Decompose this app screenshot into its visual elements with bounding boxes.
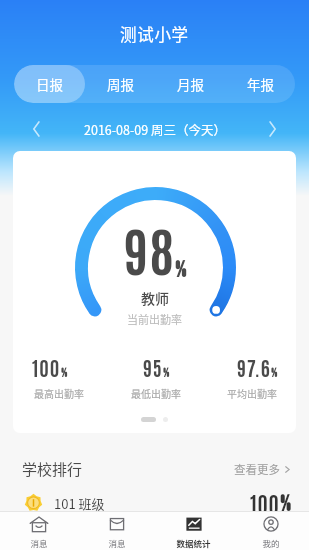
staticText: 教师 — [141, 288, 169, 308]
staticText: 查看更多 — [234, 461, 280, 478]
button[interactable]: 数据统计 — [155, 512, 232, 550]
staticText: 2016-08-09 周三（今天） — [84, 120, 226, 138]
staticText: % — [271, 365, 278, 379]
button[interactable]: 消息 — [78, 512, 155, 550]
staticText: 测试小学 — [120, 22, 189, 46]
staticText: 学校排行 — [22, 458, 83, 480]
staticText: % — [163, 365, 170, 379]
staticText: 月报 — [177, 74, 204, 94]
staticText: 我的 — [262, 537, 280, 549]
staticText: % — [280, 491, 291, 516]
staticText: 100 — [250, 490, 280, 516]
button[interactable]: 周报 — [85, 65, 155, 103]
button[interactable]: 年报 — [225, 65, 295, 103]
staticText: 最高出勤率 — [34, 386, 84, 400]
button[interactable]: 查看更多 — [230, 458, 295, 481]
staticText: 97.6 — [237, 354, 271, 379]
staticText: 最低出勤率 — [131, 386, 181, 400]
staticText: 消息 — [108, 537, 126, 549]
button[interactable]: 消息 — [0, 512, 78, 550]
staticText: 95 — [143, 354, 163, 379]
button[interactable]: Next day — [261, 118, 283, 140]
button[interactable]: 101 班级 — [0, 490, 309, 516]
button[interactable]: 月报 — [155, 65, 225, 103]
button[interactable]: Previous day — [26, 118, 48, 140]
staticText: 年报 — [247, 74, 274, 94]
staticText: 98 — [124, 214, 175, 282]
staticText: 周报 — [107, 74, 134, 94]
staticText: 平均出勤率 — [227, 386, 277, 400]
staticText: 日报 — [36, 74, 63, 94]
staticText: 消息 — [30, 537, 48, 549]
staticText: 数据统计 — [176, 537, 211, 549]
button[interactable]: 日报 — [14, 65, 85, 103]
button[interactable]: 我的 — [232, 512, 309, 550]
staticText: 当前出勤率 — [127, 311, 182, 327]
staticText: % — [61, 365, 68, 379]
staticText: % — [175, 256, 186, 282]
staticText: 101 班级 — [54, 494, 105, 513]
staticText: 100 — [32, 354, 61, 379]
